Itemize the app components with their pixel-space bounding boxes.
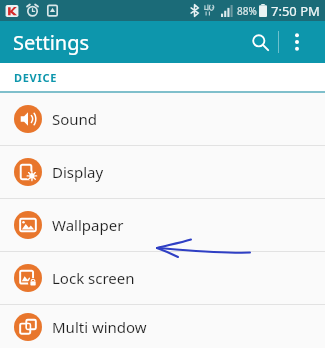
button[interactable]: Sound — [0, 93, 325, 145]
staticText: Settings — [13, 29, 90, 56]
staticText: DEVICE — [14, 70, 58, 85]
staticText: Wallpaper — [52, 215, 124, 235]
button[interactable]: Search — [242, 24, 278, 60]
button[interactable]: Multi window — [0, 305, 325, 348]
staticText: Display — [52, 162, 104, 182]
staticText: 7:50 PM — [271, 2, 320, 20]
staticText: 88% — [237, 4, 257, 18]
button[interactable]: Wallpaper — [0, 199, 325, 251]
staticText: Lock screen — [52, 268, 135, 288]
button[interactable]: Display — [0, 146, 325, 198]
staticText: Sound — [52, 109, 98, 129]
staticText: Multi window — [52, 317, 147, 337]
button[interactable]: Lock screen — [0, 252, 325, 304]
button[interactable]: More options — [279, 24, 315, 60]
